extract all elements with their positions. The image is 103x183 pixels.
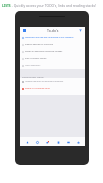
staticText: Delete all completed items <box>25 87 50 90</box>
button[interactable]: Design an awesome marketing strategy <box>20 48 85 55</box>
staticText: Plan a summer holiday <box>25 57 47 60</box>
staticText: To-do's <box>47 28 59 33</box>
staticText: Prepare agenda for the board <box>25 43 53 46</box>
staticText: Design an awesome marketing strategy <box>25 50 63 53</box>
staticText: Implement the new way of working in our … <box>25 36 74 39</box>
staticText: LISTS <box>2 3 11 7</box>
button[interactable]: Notes <box>55 139 61 145</box>
staticText: COMPLETED ITEMS <box>22 75 44 78</box>
button[interactable]: Add a new item... <box>20 62 85 69</box>
button[interactable]: Implement the new way of working in our … <box>20 34 85 41</box>
button[interactable]: Sync <box>34 139 40 145</box>
staticText: Update new ways of working procedures <box>25 80 64 83</box>
button[interactable]: Prepare agenda for the board <box>20 41 85 48</box>
staticText: - Quickly access your TODO's, links and … <box>11 3 97 7</box>
button[interactable]: Delete all completed items <box>20 85 85 95</box>
button[interactable]: Cart <box>44 139 50 145</box>
staticText: Add a new item... <box>25 64 42 67</box>
button[interactable]: Lists <box>65 139 71 145</box>
button[interactable]: Plan a summer holiday <box>20 55 85 62</box>
button[interactable]: Alerts <box>24 139 30 145</box>
button[interactable]: Filter <box>79 29 82 32</box>
button[interactable]: Home <box>75 139 81 145</box>
button[interactable]: Update new ways of working procedures <box>20 78 85 85</box>
